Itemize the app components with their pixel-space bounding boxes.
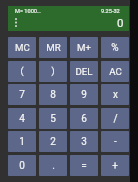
- staticText: 2: [50, 136, 56, 148]
- staticText: 5: [50, 113, 56, 125]
- button[interactable]: +: [101, 155, 129, 176]
- staticText: 0: [117, 16, 124, 29]
- staticText: 9: [81, 89, 87, 101]
- staticText: MR: [46, 42, 61, 53]
- button[interactable]: 5: [39, 108, 67, 129]
- button[interactable]: 8: [39, 84, 67, 105]
- staticText: -: [114, 136, 117, 148]
- button[interactable]: 6: [70, 108, 98, 129]
- staticText: MC: [15, 42, 30, 53]
- staticText: M+: [77, 42, 91, 53]
- staticText: 9.25-32: [101, 8, 120, 15]
- staticText: /: [113, 113, 118, 125]
- button[interactable]: 0: [8, 155, 36, 176]
- button[interactable]: MR: [39, 37, 67, 58]
- staticText: 1: [19, 136, 25, 148]
- button[interactable]: 2: [39, 131, 67, 152]
- button[interactable]: AC: [101, 61, 129, 82]
- button[interactable]: DEL: [70, 61, 98, 82]
- button[interactable]: 4: [8, 108, 36, 129]
- staticText: .: [52, 160, 55, 172]
- button[interactable]: /: [101, 108, 129, 129]
- button[interactable]: 1: [8, 131, 36, 152]
- button[interactable]: =: [70, 155, 98, 176]
- staticText: ): [51, 66, 55, 77]
- staticText: 7: [19, 89, 25, 101]
- staticText: AC: [109, 66, 122, 77]
- button[interactable]: More options: [11, 17, 21, 29]
- button[interactable]: 9: [70, 84, 98, 105]
- button[interactable]: x: [101, 84, 129, 105]
- button[interactable]: -: [101, 131, 129, 152]
- staticText: x: [113, 89, 118, 101]
- staticText: =: [81, 160, 87, 172]
- staticText: 3: [81, 136, 87, 148]
- staticText: 8: [50, 89, 56, 101]
- button[interactable]: %: [101, 37, 129, 58]
- button[interactable]: ): [39, 61, 67, 82]
- button[interactable]: .: [39, 155, 67, 176]
- button[interactable]: 7: [8, 84, 36, 105]
- staticText: %: [111, 42, 119, 54]
- staticText: DEL: [75, 66, 93, 77]
- staticText: +: [112, 160, 118, 172]
- staticText: 6: [81, 113, 87, 125]
- staticText: (: [20, 66, 24, 77]
- button[interactable]: 3: [70, 131, 98, 152]
- button[interactable]: (: [8, 61, 36, 82]
- staticText: 4: [19, 113, 25, 125]
- staticText: 0: [19, 160, 25, 172]
- button[interactable]: M+: [70, 37, 98, 58]
- staticText: M= 1000…: [15, 8, 41, 15]
- button[interactable]: MC: [8, 37, 36, 58]
